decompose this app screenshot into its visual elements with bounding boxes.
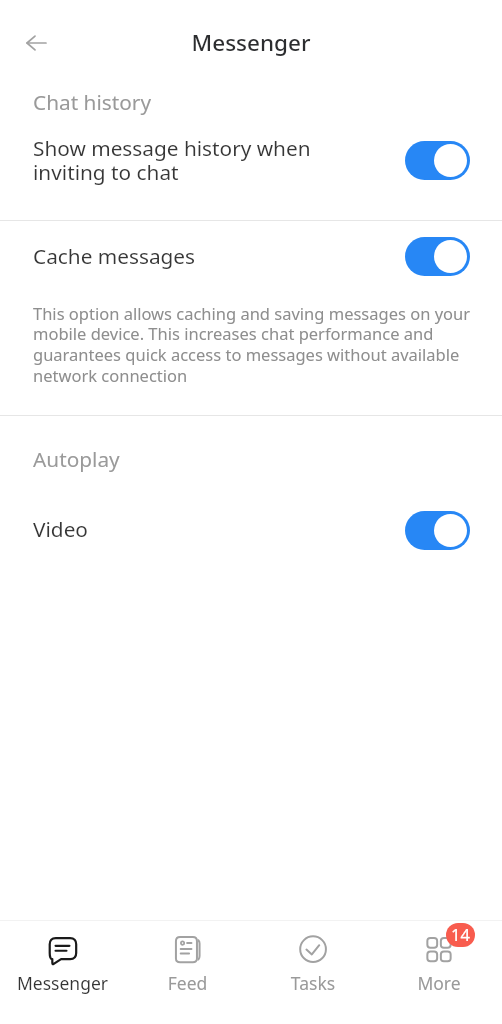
button[interactable]: Messenger — [0, 921, 125, 1024]
button[interactable] — [405, 511, 470, 550]
button[interactable]: Cache messages — [0, 221, 502, 291]
staticText: Autoplay — [33, 445, 120, 473]
button[interactable]: Tasks — [250, 921, 376, 1024]
button[interactable]: 14 — [376, 921, 502, 1024]
staticText: Messenger — [0, 971, 125, 995]
staticText: Video — [33, 515, 88, 543]
button[interactable]: Feed — [125, 921, 250, 1024]
staticText: More — [376, 971, 502, 995]
staticText: 14 — [451, 923, 470, 945]
button[interactable]: Show message history when inviting to ch… — [0, 125, 502, 220]
staticText: Cache messages — [33, 242, 196, 270]
button[interactable] — [405, 237, 470, 276]
staticText: Chat history — [33, 88, 152, 116]
staticText: Tasks — [250, 971, 376, 995]
staticText: Messenger — [0, 27, 502, 58]
staticText: This option allows caching and saving me… — [33, 302, 478, 387]
button[interactable]: Video — [0, 502, 502, 572]
staticText: Feed — [125, 971, 250, 995]
staticText: Show message history when inviting to ch… — [33, 134, 311, 186]
button[interactable] — [405, 141, 470, 180]
button[interactable]: Back — [14, 21, 58, 65]
